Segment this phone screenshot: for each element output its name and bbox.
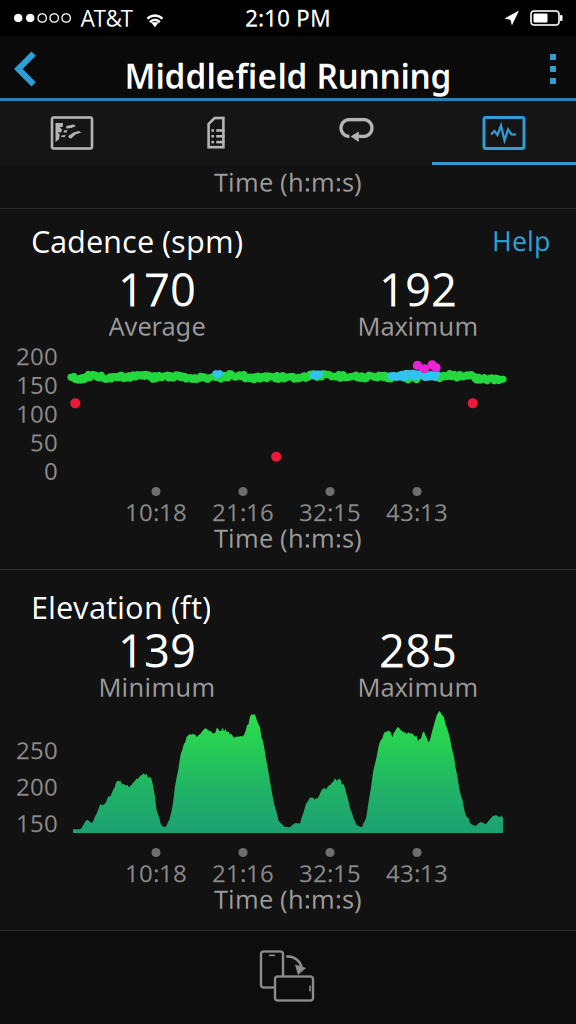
button[interactable]: Details [144, 101, 288, 165]
staticText: Maximum [357, 309, 478, 343]
staticText: Time (h:m:s) [214, 521, 362, 555]
staticText: 200 [16, 340, 58, 372]
staticText: 2:10 PM [245, 3, 331, 33]
staticText: Time (h:m:s) [214, 165, 362, 199]
button[interactable]: Laps [288, 101, 432, 165]
button[interactable]: Map [0, 101, 144, 165]
staticText: 170 [118, 259, 196, 319]
staticText: 139 [118, 620, 196, 680]
staticText: AT&T [80, 3, 133, 33]
staticText: Time (h:m:s) [214, 882, 362, 916]
staticText: 43:13 [386, 857, 448, 889]
staticText: 10:18 [125, 857, 187, 889]
staticText: 100 [16, 397, 58, 429]
button[interactable]: Rotate device [257, 950, 319, 1004]
staticText: 32:15 [299, 857, 361, 889]
staticText: 32:15 [299, 496, 361, 528]
button[interactable]: Back [0, 40, 56, 98]
staticText: 50 [30, 426, 58, 458]
staticText: Average [108, 309, 205, 343]
button[interactable]: Charts [432, 101, 576, 165]
button[interactable]: More options [526, 43, 576, 95]
button[interactable]: Help [486, 219, 556, 263]
staticText: Elevation (ft) [31, 587, 211, 627]
staticText: 200 [16, 771, 58, 802]
staticText: 150 [16, 369, 58, 401]
staticText: 192 [379, 259, 457, 319]
staticText: Cadence (spm) [31, 221, 243, 261]
staticText: 285 [379, 620, 457, 680]
staticText: 43:13 [386, 496, 448, 528]
staticText: Help [492, 223, 550, 259]
staticText: Maximum [357, 670, 478, 704]
staticText: 21:16 [212, 857, 274, 889]
staticText: 250 [16, 734, 58, 766]
staticText: 21:16 [212, 496, 274, 528]
staticText: 10:18 [125, 496, 187, 528]
staticText: 0 [44, 455, 58, 487]
staticText: Middlefield Running [124, 54, 451, 98]
staticText: Minimum [98, 670, 215, 704]
staticText: 150 [16, 807, 58, 839]
